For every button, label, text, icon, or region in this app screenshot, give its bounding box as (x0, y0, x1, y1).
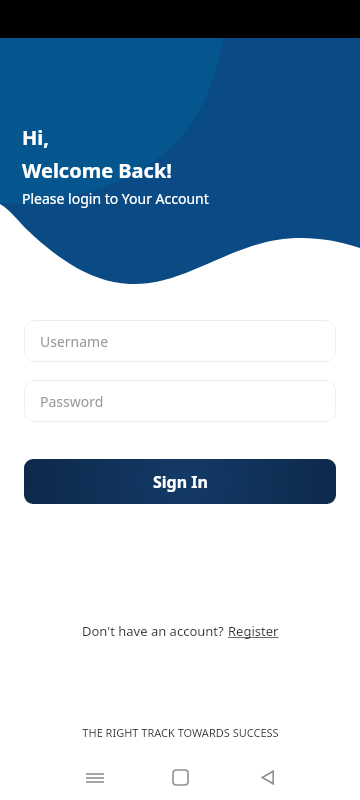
staticText: Username (40, 332, 109, 351)
button[interactable]: Password (24, 380, 336, 422)
button[interactable]: Username (24, 320, 336, 362)
button[interactable]: Sign In (24, 459, 336, 504)
staticText: Register (228, 622, 279, 640)
button[interactable]: Home (163, 755, 197, 800)
staticText: Sign In (153, 471, 208, 493)
button[interactable]: Register (228, 622, 279, 640)
staticText: Password (40, 392, 104, 411)
staticText: THE RIGHT TRACK TOWARDS SUCCESS (82, 725, 279, 740)
staticText: Welcome Back! (22, 157, 172, 184)
button[interactable]: Recents (78, 755, 112, 800)
staticText: Don't have an account? (82, 622, 228, 640)
button[interactable]: Back (250, 755, 284, 800)
staticText: Please login to Your Account (22, 189, 209, 208)
staticText: Hi, (22, 124, 49, 151)
